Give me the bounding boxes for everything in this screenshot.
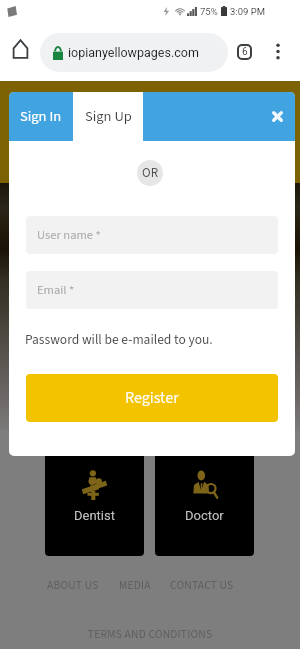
button[interactable]: Doctor: [155, 447, 254, 556]
button[interactable]: CONTACT US: [170, 577, 234, 593]
staticText: iopianyellowpages.com: [68, 45, 199, 60]
staticText: TERMS AND CONDITIONS: [0, 626, 300, 642]
button[interactable]: MEDIA: [119, 577, 151, 593]
button[interactable]: ABOUT US: [47, 577, 99, 593]
staticText: User name *: [37, 226, 101, 244]
staticText: Doctor: [185, 508, 224, 523]
button[interactable]: Register: [26, 374, 278, 422]
button[interactable]: Tabs: [230, 38, 258, 66]
staticText: CONTACT US: [170, 577, 234, 593]
button[interactable]: Email *: [26, 271, 278, 309]
staticText: Register: [125, 387, 179, 410]
staticText: ABOUT US: [47, 577, 99, 593]
button[interactable]: Dentist: [45, 447, 144, 556]
staticText: Email *: [37, 281, 75, 299]
staticText: Sign In: [20, 106, 62, 127]
staticText: 3:09 PM: [230, 6, 265, 17]
staticText: OR: [142, 164, 159, 183]
button[interactable]: Sign In: [9, 92, 73, 141]
staticText: 6: [242, 46, 248, 58]
staticText: Password will be e-mailed to you.: [25, 330, 213, 349]
button[interactable]: iopianyellowpages.com: [40, 33, 228, 72]
staticText: Sign Up: [85, 106, 132, 127]
staticText: 75%: [200, 6, 218, 17]
button[interactable]: Close: [259, 92, 295, 141]
staticText: Dentist: [74, 508, 115, 523]
button[interactable]: More options: [264, 38, 291, 65]
button[interactable]: Home: [6, 35, 34, 63]
button[interactable]: Sign Up: [73, 92, 143, 141]
button[interactable]: User name *: [26, 216, 278, 254]
staticText: MEDIA: [119, 577, 151, 593]
